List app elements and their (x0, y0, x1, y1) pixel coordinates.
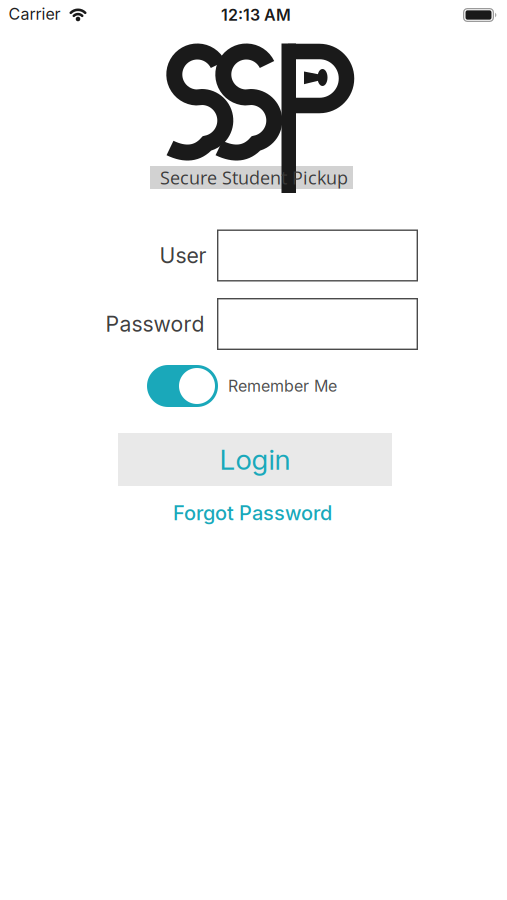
staticText: User (159, 243, 206, 268)
button[interactable]: Forgot Password (173, 501, 332, 525)
staticText: Remember Me (228, 377, 337, 395)
staticText: Secure Student Pickup (160, 165, 348, 190)
staticText: Forgot Password (173, 501, 332, 525)
button[interactable]: Remember Me (147, 365, 218, 407)
staticText: 12:13 AM (221, 6, 291, 24)
staticText: Password (105, 311, 204, 337)
button[interactable]: Login (118, 433, 392, 486)
staticText: Carrier (8, 5, 60, 23)
staticText: Login (219, 443, 290, 476)
